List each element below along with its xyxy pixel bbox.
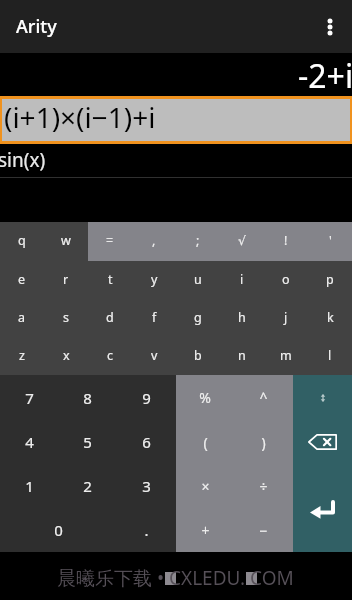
staticText: d xyxy=(106,309,114,326)
button[interactable]: 8 xyxy=(58,375,117,420)
button[interactable]: + xyxy=(176,508,234,552)
button[interactable]: − xyxy=(234,508,293,552)
button[interactable]: u xyxy=(176,261,220,299)
button[interactable]: √ xyxy=(220,222,264,261)
button[interactable]: l xyxy=(308,337,352,375)
button[interactable]: b xyxy=(176,337,220,375)
staticText: p xyxy=(326,271,334,288)
button[interactable]: d xyxy=(88,299,132,337)
button[interactable]: ' xyxy=(308,222,352,261)
button[interactable]: 0 xyxy=(0,508,117,552)
button[interactable]: m xyxy=(264,337,308,375)
button[interactable]: h xyxy=(220,299,264,337)
button[interactable]: sin(x) xyxy=(0,144,352,178)
staticText: . xyxy=(144,520,149,540)
button[interactable]: 7 xyxy=(0,375,58,420)
staticText: % xyxy=(199,388,211,407)
button[interactable]: x xyxy=(44,337,88,375)
staticText: r xyxy=(63,271,69,288)
staticText: c xyxy=(107,347,114,364)
button[interactable]: 5 xyxy=(58,420,117,464)
staticText: k xyxy=(327,309,334,326)
staticText: i xyxy=(240,271,244,288)
staticText: (i+1)×(i−1)+i xyxy=(4,98,156,136)
staticText: j xyxy=(284,309,288,326)
button[interactable]: × xyxy=(176,464,234,508)
button[interactable]: 9 xyxy=(117,375,176,420)
button[interactable]: (i+1)×(i−1)+i xyxy=(2,99,350,141)
staticText: m xyxy=(280,347,292,364)
button[interactable]: k xyxy=(308,299,352,337)
staticText: -2+i xyxy=(298,54,352,97)
button[interactable]: s xyxy=(44,299,88,337)
button[interactable]: j xyxy=(264,299,308,337)
staticText: w xyxy=(61,232,71,249)
button[interactable]: o xyxy=(264,261,308,299)
button[interactable]: f xyxy=(132,299,176,337)
button[interactable]: ; xyxy=(176,222,220,261)
staticText: CXLEDU. xyxy=(169,565,246,591)
staticText: t xyxy=(108,271,113,288)
button[interactable]: a xyxy=(0,299,44,337)
button[interactable]: t xyxy=(88,261,132,299)
staticText: f xyxy=(152,309,157,326)
button[interactable]: i xyxy=(220,261,264,299)
button[interactable]: 6 xyxy=(117,420,176,464)
staticText: ) xyxy=(261,433,266,452)
button[interactable]: More options xyxy=(308,0,352,53)
button[interactable]: e xyxy=(0,261,44,299)
button[interactable]: ) xyxy=(234,420,293,464)
button[interactable]: c xyxy=(88,337,132,375)
button[interactable]: 3 xyxy=(117,464,176,508)
staticText: × xyxy=(201,477,210,496)
staticText: 3 xyxy=(142,476,151,496)
button[interactable]: 1 xyxy=(0,464,58,508)
button[interactable]: v xyxy=(132,337,176,375)
staticText: √ xyxy=(238,233,246,248)
staticText: 1 xyxy=(25,476,34,496)
button[interactable]: 2 xyxy=(58,464,117,508)
staticText: o xyxy=(282,271,290,288)
button[interactable]: q xyxy=(0,222,44,261)
button[interactable]: Enter xyxy=(293,463,352,552)
staticText: b xyxy=(194,347,202,364)
staticText: 6 xyxy=(142,432,151,452)
staticText: − xyxy=(259,521,268,540)
staticText: = xyxy=(106,232,114,249)
button[interactable]: g xyxy=(176,299,220,337)
button[interactable]: % xyxy=(176,375,234,420)
staticText: s xyxy=(63,309,69,326)
button[interactable]: ^ xyxy=(234,375,293,420)
button[interactable]: = xyxy=(88,222,132,261)
button[interactable]: ! xyxy=(264,222,308,261)
button[interactable]: z xyxy=(0,337,44,375)
staticText: ! xyxy=(284,232,288,249)
staticText: y xyxy=(151,271,158,288)
staticText: 7 xyxy=(25,388,34,408)
staticText: q xyxy=(18,232,26,249)
staticText: COM xyxy=(250,565,294,591)
button[interactable]: Switch keyboard xyxy=(293,375,352,419)
button[interactable]: n xyxy=(220,337,264,375)
button[interactable]: 4 xyxy=(0,420,58,464)
button[interactable]: ( xyxy=(176,420,234,464)
button[interactable]: , xyxy=(132,222,176,261)
staticText: ÷ xyxy=(259,477,268,496)
button[interactable]: w xyxy=(44,222,88,261)
staticText: , xyxy=(152,232,156,249)
staticText: ' xyxy=(329,232,332,249)
button[interactable]: p xyxy=(308,261,352,299)
staticText: 晨曦乐下载 • xyxy=(57,565,165,591)
button[interactable]: ÷ xyxy=(234,464,293,508)
staticText: n xyxy=(238,347,246,364)
staticText: 4 xyxy=(25,432,34,452)
staticText: e xyxy=(18,271,26,288)
button[interactable]: y xyxy=(132,261,176,299)
staticText: l xyxy=(328,347,332,364)
staticText: u xyxy=(194,271,202,288)
staticText: sin(x) xyxy=(0,147,46,173)
button[interactable]: r xyxy=(44,261,88,299)
button[interactable]: . xyxy=(117,508,176,552)
button[interactable]: Backspace xyxy=(293,419,352,463)
staticText: z xyxy=(19,347,25,364)
